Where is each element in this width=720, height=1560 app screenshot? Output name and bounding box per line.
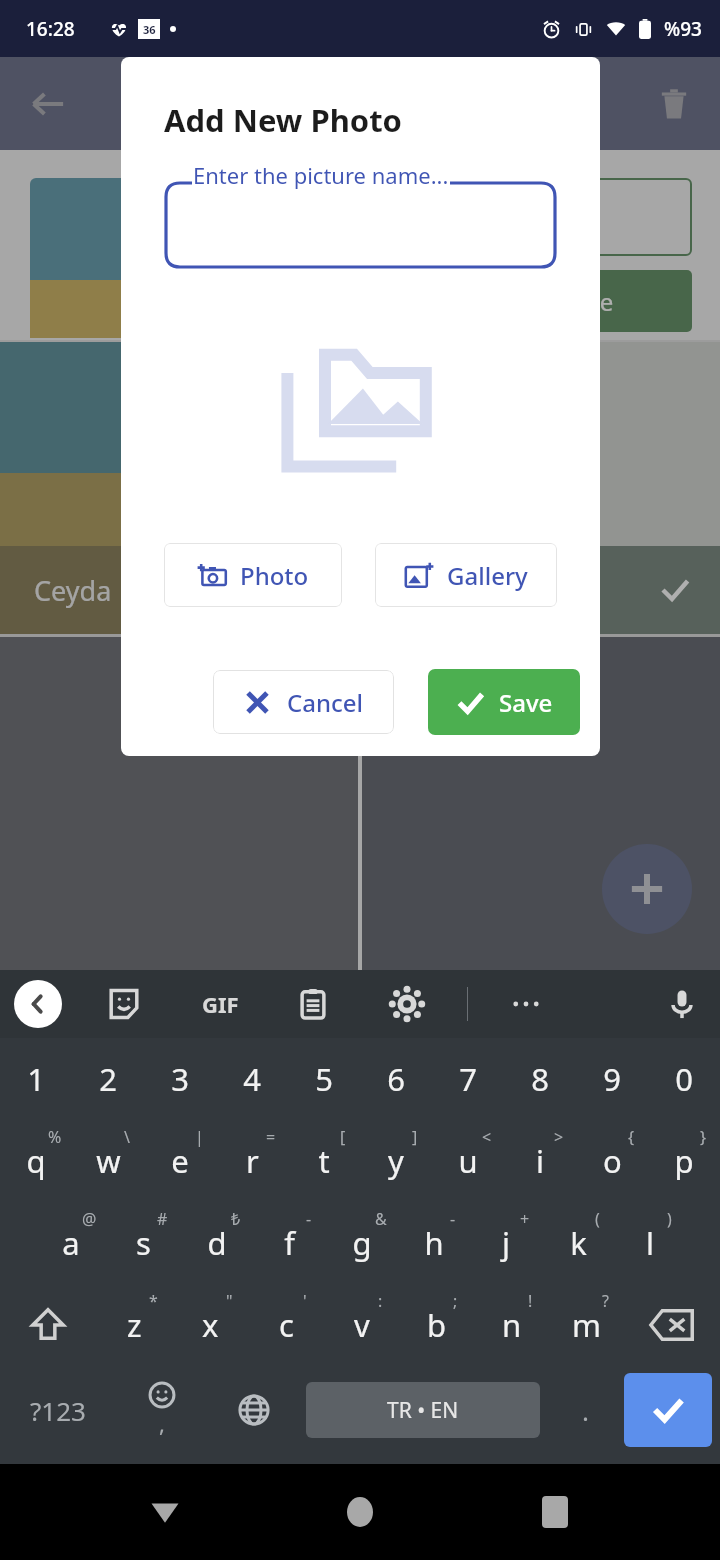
staticText: Gallery bbox=[447, 559, 528, 592]
button[interactable]: g bbox=[326, 1202, 398, 1284]
staticText: ? bbox=[602, 1290, 609, 1312]
button[interactable]: l bbox=[614, 1202, 686, 1284]
staticText: d bbox=[207, 1222, 227, 1264]
button[interactable]: o bbox=[576, 1120, 648, 1202]
button[interactable]: i bbox=[504, 1120, 576, 1202]
staticText: , bbox=[159, 1408, 165, 1438]
button[interactable]: Backspace bbox=[624, 1284, 720, 1366]
staticText: | bbox=[195, 1126, 204, 1148]
staticText: \ bbox=[124, 1126, 130, 1148]
button[interactable]: Shift bbox=[0, 1284, 96, 1366]
staticText: . bbox=[582, 1393, 589, 1428]
staticText: e bbox=[171, 1140, 189, 1182]
button[interactable]: x bbox=[172, 1284, 248, 1366]
button[interactable]: m bbox=[549, 1284, 624, 1366]
button[interactable]: Delete bbox=[658, 88, 690, 120]
button[interactable]: t bbox=[288, 1120, 360, 1202]
button[interactable]: 5 bbox=[288, 1038, 360, 1120]
button[interactable]: q bbox=[0, 1120, 72, 1202]
button[interactable]: Cancel bbox=[213, 670, 394, 734]
staticText: TR • EN bbox=[387, 1396, 459, 1425]
button[interactable]: p bbox=[648, 1120, 720, 1202]
button[interactable]: j bbox=[470, 1202, 542, 1284]
button[interactable]: h bbox=[398, 1202, 470, 1284]
button[interactable]: f bbox=[253, 1202, 326, 1284]
button[interactable]: Voice input bbox=[666, 988, 698, 1020]
button[interactable]: u bbox=[432, 1120, 504, 1202]
staticText: n bbox=[502, 1304, 522, 1346]
staticText: @ bbox=[82, 1208, 97, 1230]
button[interactable]: 2 bbox=[72, 1038, 144, 1120]
button[interactable]: a bbox=[34, 1202, 107, 1284]
button[interactable]: d bbox=[180, 1202, 253, 1284]
staticText: > bbox=[554, 1126, 564, 1148]
button[interactable]: 9 bbox=[576, 1038, 648, 1120]
staticText: ₺ bbox=[231, 1208, 241, 1230]
button[interactable]: z bbox=[96, 1284, 172, 1366]
button[interactable]: 7 bbox=[432, 1038, 504, 1120]
staticText: 9 bbox=[603, 1058, 621, 1100]
button[interactable]: Change language bbox=[208, 1366, 300, 1454]
staticText: %93 bbox=[664, 16, 702, 42]
staticText: - bbox=[306, 1208, 312, 1230]
button[interactable]: w bbox=[72, 1120, 144, 1202]
staticText: # bbox=[157, 1208, 168, 1230]
staticText: i bbox=[536, 1140, 544, 1182]
button[interactable]: s bbox=[107, 1202, 180, 1284]
button[interactable]: v bbox=[324, 1284, 399, 1366]
button[interactable]: Emoji bbox=[116, 1366, 208, 1454]
button[interactable]: e bbox=[144, 1120, 216, 1202]
staticText: * bbox=[149, 1290, 158, 1312]
button[interactable]: 3 bbox=[144, 1038, 216, 1120]
button[interactable]: 6 bbox=[360, 1038, 432, 1120]
staticText: 1 bbox=[27, 1058, 45, 1100]
button[interactable]: Recents bbox=[525, 1482, 585, 1542]
staticText: 5 bbox=[315, 1058, 333, 1100]
button[interactable]: n bbox=[474, 1284, 549, 1366]
button[interactable]: Save bbox=[428, 669, 580, 735]
button[interactable]: 4 bbox=[216, 1038, 288, 1120]
staticText: o bbox=[603, 1140, 622, 1182]
staticText: w bbox=[96, 1140, 121, 1182]
staticText: Photo bbox=[240, 559, 309, 592]
button[interactable]: Save bbox=[482, 270, 692, 332]
staticText: 7 bbox=[459, 1058, 477, 1100]
staticText: 4 bbox=[243, 1058, 261, 1100]
staticText: z bbox=[127, 1304, 142, 1346]
button[interactable]: b bbox=[399, 1284, 474, 1366]
button[interactable]: Clipboard bbox=[297, 988, 329, 1020]
staticText: Enter the picture name... bbox=[193, 160, 449, 190]
staticText: h bbox=[424, 1222, 444, 1264]
button[interactable]: Enter bbox=[624, 1373, 712, 1447]
staticText: u bbox=[458, 1140, 478, 1182]
staticText: f bbox=[284, 1222, 295, 1264]
button[interactable]: Back bbox=[135, 1482, 195, 1542]
button[interactable]: 0 bbox=[648, 1038, 720, 1120]
staticText: } bbox=[700, 1126, 707, 1148]
button[interactable]: TR • EN bbox=[306, 1382, 540, 1438]
button[interactable]: More bbox=[510, 988, 542, 1020]
staticText: Save bbox=[561, 285, 614, 318]
button[interactable]: Settings bbox=[391, 988, 423, 1020]
button[interactable]: c bbox=[248, 1284, 324, 1366]
staticText: y bbox=[388, 1140, 404, 1182]
button[interactable]: 1 bbox=[0, 1038, 72, 1120]
staticText: ] bbox=[412, 1126, 418, 1148]
button[interactable]: ?123 bbox=[0, 1366, 116, 1454]
button[interactable]: Home bbox=[330, 1482, 390, 1542]
button[interactable]: Gallery bbox=[375, 543, 557, 607]
button[interactable]: GIF bbox=[202, 989, 239, 1019]
staticText: 16:28 bbox=[26, 16, 75, 42]
button[interactable]: Add bbox=[602, 844, 692, 934]
button[interactable]: r bbox=[216, 1120, 288, 1202]
button[interactable]: . bbox=[546, 1366, 624, 1454]
button[interactable]: 8 bbox=[504, 1038, 576, 1120]
button[interactable]: Stickers bbox=[108, 988, 140, 1020]
button[interactable]: Close toolbar bbox=[14, 980, 62, 1028]
button[interactable]: y bbox=[360, 1120, 432, 1202]
button[interactable]: Photo bbox=[164, 543, 342, 607]
staticText: ?123 bbox=[30, 1393, 86, 1428]
button[interactable]: k bbox=[542, 1202, 614, 1284]
button[interactable]: Back bbox=[30, 86, 66, 122]
staticText: a bbox=[62, 1222, 80, 1264]
